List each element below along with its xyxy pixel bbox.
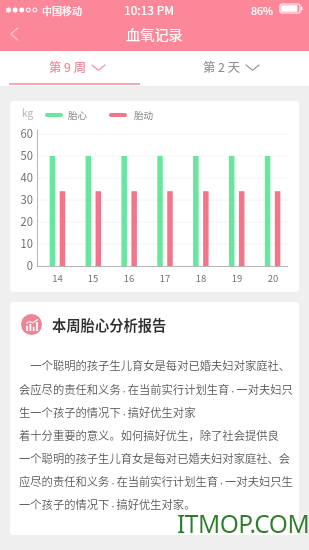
staticText: 40 xyxy=(10,169,33,185)
staticText: 18 xyxy=(183,271,219,285)
button[interactable]: 第 9 周 xyxy=(0,51,154,86)
button[interactable]: Back xyxy=(0,19,30,51)
staticText: 第 2 天 xyxy=(203,58,240,76)
staticText: 0 xyxy=(10,257,33,273)
staticText: 30 xyxy=(10,191,33,207)
staticText: 第 9 周 xyxy=(49,58,86,76)
staticText: kg xyxy=(22,105,34,120)
staticText: 14 xyxy=(40,271,75,285)
staticText: 15 xyxy=(75,271,111,285)
staticText: 16 xyxy=(111,271,147,285)
staticText: 50 xyxy=(10,147,33,163)
staticText: 20 xyxy=(10,213,33,229)
button[interactable]: 第 2 天 xyxy=(154,51,309,86)
staticText: 86% xyxy=(251,2,273,18)
staticText: 17 xyxy=(147,271,183,285)
staticText: 血氧记录 xyxy=(126,24,183,45)
staticText: 60 xyxy=(10,125,33,141)
staticText: 19 xyxy=(219,271,255,285)
staticText: 本周胎心分析报告 xyxy=(52,314,167,335)
staticText: 10:13 PM xyxy=(124,1,175,18)
staticText: 中国移动 xyxy=(42,3,82,17)
staticText: 胎心 xyxy=(68,108,88,122)
staticText: 一个聪明的孩子生儿育女是每对已婚夫妇对家庭社、 会应尽的责任和义务·在当前实行计… xyxy=(19,357,293,512)
staticText: ITMOP.COM xyxy=(177,507,309,540)
staticText: 20 xyxy=(255,271,291,285)
staticText: 10 xyxy=(10,235,33,251)
staticText: 胎动 xyxy=(134,108,154,122)
